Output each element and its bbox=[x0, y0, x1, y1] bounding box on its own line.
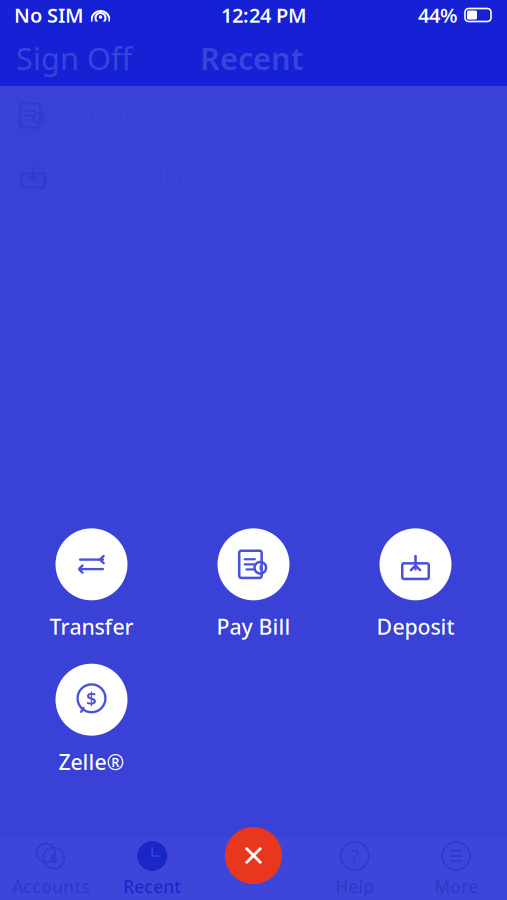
staticText: Pay Bill bbox=[216, 612, 290, 641]
staticText: Zelle® bbox=[58, 748, 124, 776]
staticText: No SIM bbox=[14, 2, 84, 28]
staticText: Recent bbox=[123, 875, 181, 898]
staticText: More bbox=[434, 875, 478, 898]
staticText: Transfer bbox=[49, 612, 133, 641]
staticText: Accounts bbox=[12, 875, 89, 898]
staticText: $ bbox=[50, 849, 58, 867]
button[interactable]: Deposit bbox=[345, 528, 485, 641]
staticText: Deposit bbox=[376, 612, 454, 641]
staticText: ? bbox=[350, 843, 359, 869]
button[interactable]: $ bbox=[21, 664, 161, 776]
button[interactable]: More bbox=[405, 840, 507, 898]
staticText: Help bbox=[335, 875, 374, 898]
button[interactable]: Close bbox=[225, 827, 282, 884]
staticText: Recent bbox=[200, 38, 303, 78]
button[interactable]: ? bbox=[304, 840, 405, 898]
button[interactable]: Pay Bill bbox=[183, 528, 323, 641]
staticText: 12:24 PM bbox=[221, 2, 307, 28]
staticText: Sign Off bbox=[16, 38, 132, 78]
button[interactable]: Recent bbox=[101, 840, 203, 898]
button[interactable]: Transfer bbox=[21, 528, 161, 641]
button[interactable]: $ bbox=[0, 840, 101, 898]
button[interactable]: Sign Off bbox=[0, 30, 148, 86]
staticText: $ bbox=[86, 686, 97, 711]
staticText: 44% bbox=[418, 2, 458, 28]
